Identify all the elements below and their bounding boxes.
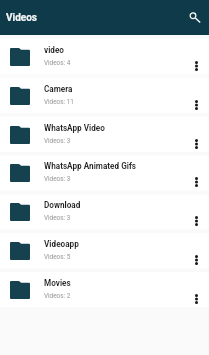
staticText: Videos: 4	[44, 59, 71, 67]
staticText: Videos: 3	[44, 137, 71, 145]
staticText: WhatsApp Animated Gifs	[44, 161, 137, 171]
button[interactable]: Movies	[0, 272, 209, 307]
button[interactable]: More options	[183, 194, 209, 229]
staticText: Videos: 5	[44, 253, 71, 261]
button[interactable]: Camera	[0, 78, 209, 113]
staticText: Videos	[6, 12, 37, 24]
staticText: Camera	[44, 84, 73, 94]
staticText: video	[44, 45, 64, 55]
button[interactable]: More options	[183, 78, 209, 113]
staticText: Videos: 3	[44, 175, 71, 183]
button[interactable]: More options	[183, 233, 209, 268]
staticText: Videos: 3	[44, 214, 71, 222]
staticText: Movies	[44, 278, 71, 288]
button[interactable]: Search	[183, 6, 207, 29]
button[interactable]: More options	[183, 272, 209, 307]
staticText: Videoapp	[44, 239, 79, 249]
staticText: WhatsApp Video	[44, 123, 105, 133]
button[interactable]: video	[0, 39, 209, 74]
staticText: Videos: 2	[44, 292, 71, 300]
button[interactable]: Videoapp	[0, 233, 209, 268]
button[interactable]: More options	[183, 117, 209, 152]
staticText: Download	[44, 200, 81, 210]
button[interactable]: Download	[0, 194, 209, 229]
staticText: Videos: 11	[44, 98, 74, 106]
button[interactable]: WhatsApp Animated Gifs	[0, 155, 209, 190]
button[interactable]: WhatsApp Video	[0, 117, 209, 152]
button[interactable]: More options	[183, 155, 209, 190]
button[interactable]: More options	[183, 39, 209, 74]
